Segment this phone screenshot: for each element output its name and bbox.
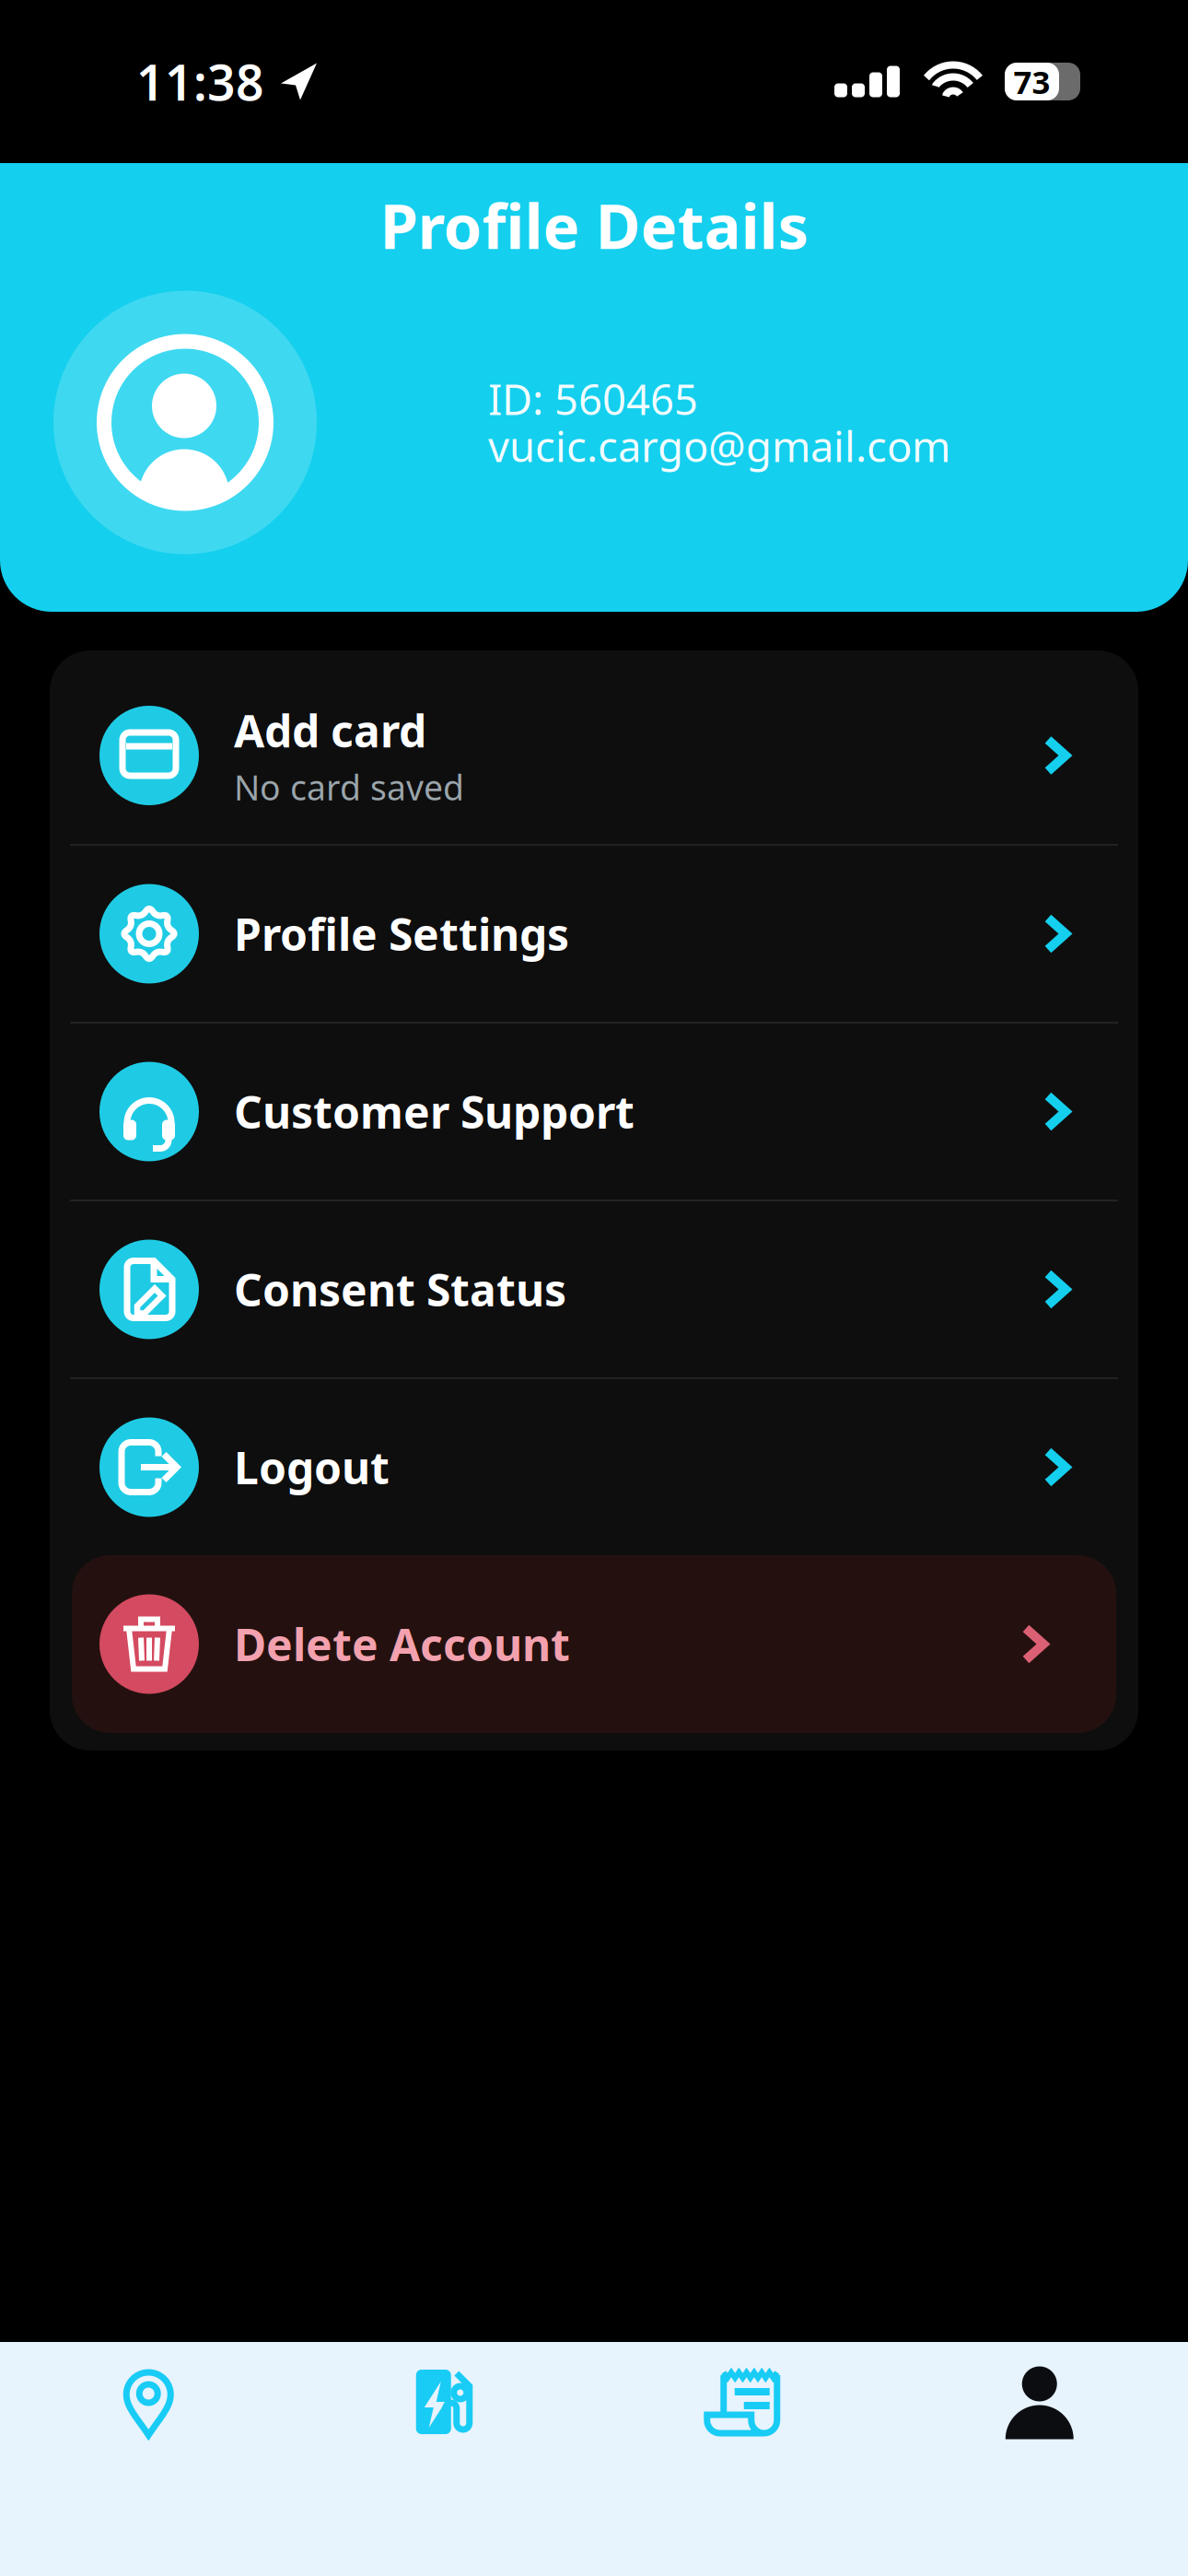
button[interactable]: Receipts [594,2342,891,2462]
button[interactable]: Charging stations [297,2342,594,2462]
staticText: 11:38 [136,49,264,114]
staticText: Profile Settings [234,904,569,963]
button[interactable]: Profile [891,2342,1188,2462]
staticText: Consent Status [234,1260,566,1319]
button[interactable]: Profile Settings [50,846,1138,1022]
staticText: 73 [1013,60,1050,103]
button[interactable]: Map [0,2342,297,2462]
staticText: No card saved [234,764,464,810]
button[interactable]: Delete Account [72,1555,1116,1733]
staticText: Delete Account [234,1615,570,1673]
staticText: vucic.cargo@gmail.com [488,418,950,474]
staticText: Logout [234,1438,390,1496]
staticText: ID: 560465 [488,371,698,427]
button[interactable]: Add card [50,650,1138,844]
staticText: Customer Support [234,1082,635,1141]
button[interactable]: Customer Support [50,1024,1138,1200]
button[interactable]: Logout [50,1379,1138,1555]
staticText: Add card [234,701,426,760]
button[interactable]: Consent Status [50,1201,1138,1377]
staticText: Profile Details [380,184,808,266]
